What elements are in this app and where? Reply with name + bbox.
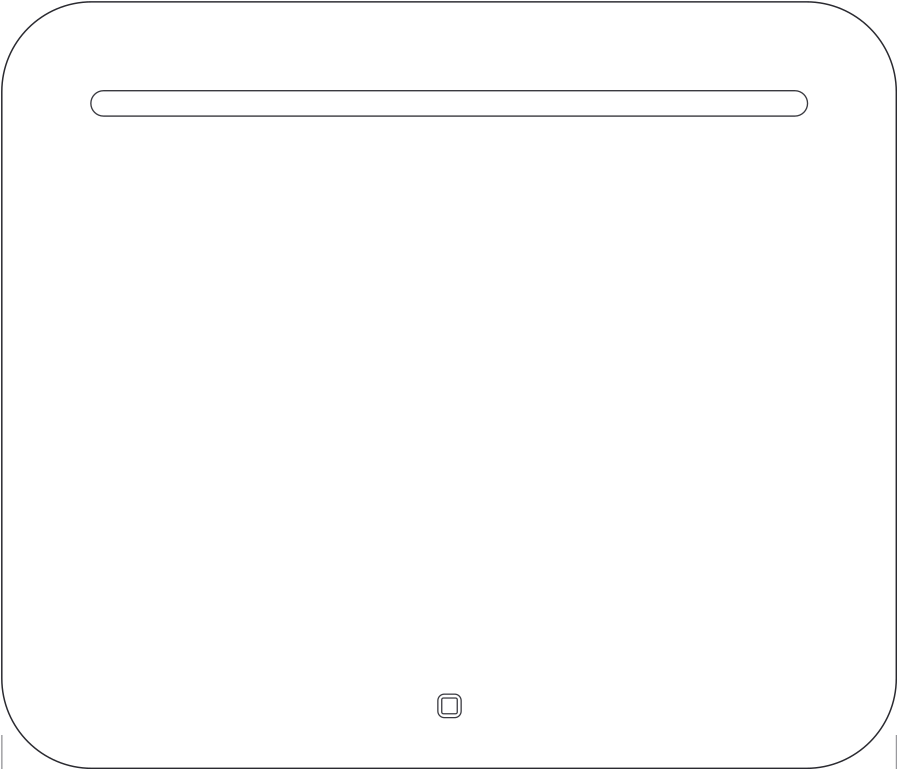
button[interactable]: Home xyxy=(438,694,461,718)
